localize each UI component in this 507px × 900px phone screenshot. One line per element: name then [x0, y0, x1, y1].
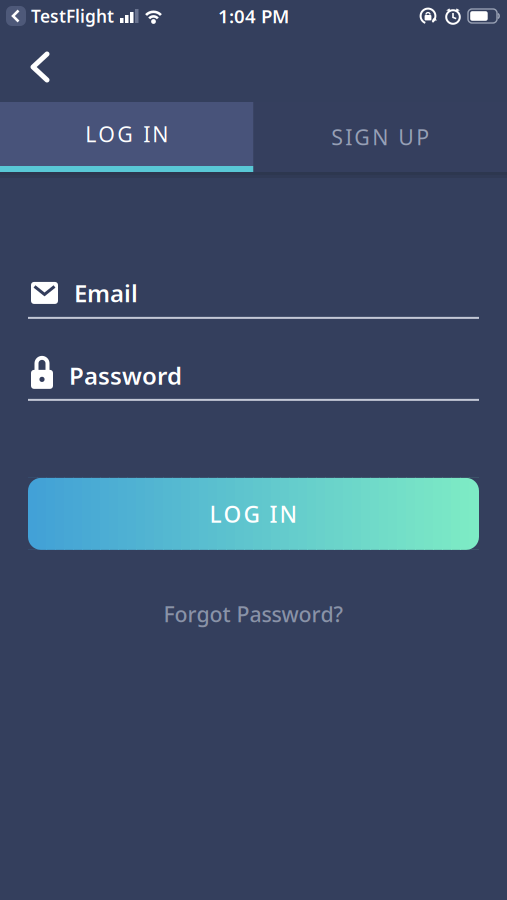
button[interactable]: LOG IN: [0, 102, 253, 172]
staticText: Forgot Password?: [163, 600, 343, 628]
staticText: LOG IN: [85, 120, 168, 148]
button[interactable]: Forgot Password?: [163, 600, 343, 628]
staticText: LOG IN: [209, 499, 297, 529]
button[interactable]: LOG IN: [28, 478, 479, 550]
staticText: SIGN UP: [331, 123, 429, 151]
button[interactable]: Email: [0, 277, 507, 319]
button[interactable]: SIGN UP: [253, 102, 507, 172]
button[interactable]: Back to TestFlight: [6, 4, 114, 27]
button[interactable]: Back: [20, 47, 60, 87]
staticText: Password: [69, 359, 182, 391]
staticText: TestFlight: [31, 4, 114, 27]
button[interactable]: Password: [0, 356, 507, 401]
staticText: Email: [74, 277, 138, 309]
staticText: 1:04 PM: [218, 4, 289, 28]
